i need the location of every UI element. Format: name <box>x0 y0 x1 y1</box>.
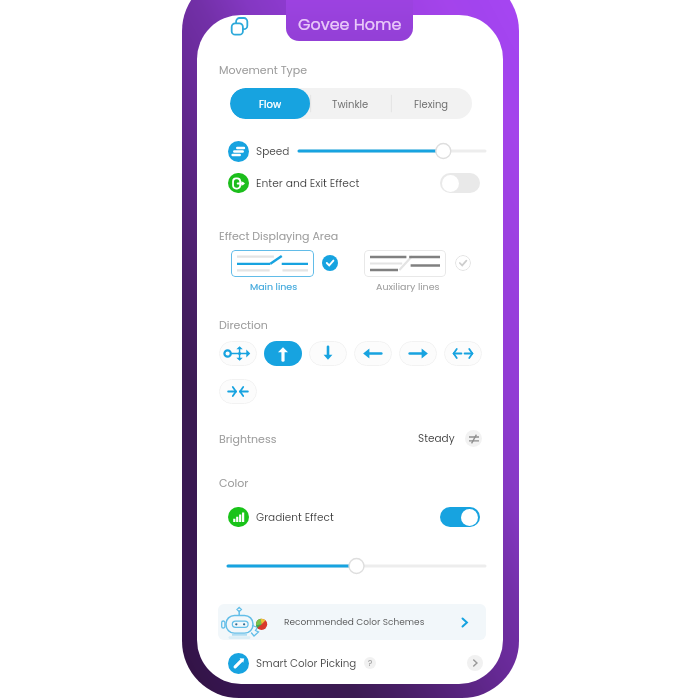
staticText: Gradient Effect <box>256 510 334 525</box>
staticText: Effect Displaying Area <box>219 228 339 243</box>
button[interactable]: Enter and Exit Effect toggle <box>440 173 480 193</box>
button[interactable]: Auxiliary lines <box>364 250 446 277</box>
button[interactable]: Twinkle <box>310 88 391 119</box>
staticText: ? <box>368 658 373 669</box>
staticText: Smart Color Picking <box>256 656 357 670</box>
button[interactable]: Left <box>354 341 392 366</box>
button[interactable]: Main lines <box>231 250 314 277</box>
staticText: Steady <box>418 431 455 446</box>
staticText: Flow <box>259 97 282 111</box>
button[interactable]: Duplicate <box>230 17 248 35</box>
button[interactable]: Outward <box>444 341 482 366</box>
staticText: Speed <box>256 144 290 159</box>
staticText: Color <box>219 475 249 490</box>
button[interactable]: Smart Color Picking <box>228 651 483 675</box>
button[interactable]: Recommended Color Schemes <box>218 604 486 640</box>
staticText: Govee Home <box>298 13 402 35</box>
button[interactable]: Gradient Effect toggle <box>440 507 480 527</box>
button[interactable]: Up <box>264 341 302 366</box>
button[interactable]: All directions <box>219 341 257 366</box>
button[interactable]: Auxiliary lines unselected <box>455 255 471 271</box>
staticText: Brightness <box>219 431 277 446</box>
button[interactable]: Right <box>399 341 437 366</box>
button[interactable]: Down <box>309 341 347 366</box>
staticText: Recommended Color Schemes <box>284 616 425 629</box>
staticText: Auxiliary lines <box>376 280 440 293</box>
staticText: Twinkle <box>332 97 369 111</box>
staticText: Enter and Exit Effect <box>256 176 360 191</box>
staticText: Direction <box>219 317 268 332</box>
staticText: Flexing <box>414 97 449 111</box>
staticText: Main lines <box>250 280 298 293</box>
staticText: Movement Type <box>219 62 308 77</box>
button[interactable]: Change brightness mode <box>465 430 482 447</box>
button[interactable]: Flexing <box>391 88 472 119</box>
button[interactable]: Open smart color picking <box>467 655 483 671</box>
button[interactable]: Flow <box>230 88 310 119</box>
button[interactable]: Main lines selected <box>322 255 338 271</box>
button[interactable]: Inward <box>219 379 257 404</box>
